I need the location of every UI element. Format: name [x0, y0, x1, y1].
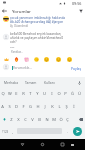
staticText: C: [24, 117, 27, 123]
button[interactable]: Shift: [0, 113, 8, 126]
staticText: Z: [10, 117, 13, 123]
staticText: #b-b20 #changeourdiag #AJ #jargon: [10, 20, 64, 24]
staticText: İ: [73, 104, 75, 110]
staticText: Tamam: [25, 80, 37, 84]
button[interactable]: E: [13, 87, 20, 100]
staticText: Y: [36, 91, 39, 97]
button[interactable]: Back: [0, 6, 9, 15]
staticText: Ç: [66, 117, 69, 123]
staticText: O: [57, 91, 61, 97]
staticText: Ğ: [71, 91, 74, 97]
staticText: Ü: [78, 91, 81, 97]
button[interactable]: W: [6, 87, 13, 100]
button[interactable]: K: [49, 100, 56, 113]
button[interactable]: Reaction: [32, 55, 40, 63]
button[interactable]: Reaction: [42, 55, 50, 63]
button[interactable]: T: [27, 87, 34, 100]
button[interactable]: U: [41, 87, 48, 100]
button[interactable]: Send: [72, 126, 82, 137]
staticText: A: [1, 104, 4, 110]
button[interactable]: B: [36, 113, 43, 126]
button[interactable]: Merhaba: [2, 78, 20, 86]
staticText: P: [64, 91, 67, 97]
button[interactable]: V: [29, 113, 36, 126]
button[interactable]: Comma: [10, 126, 16, 137]
button[interactable]: Y: [34, 87, 41, 100]
staticText: S: [8, 104, 11, 110]
staticText: J: [44, 104, 46, 110]
button[interactable]: Ğ: [69, 87, 76, 100]
button[interactable]: Switch keyboard: [67, 139, 77, 150]
staticText: I: [51, 91, 53, 97]
button[interactable]: H: [34, 100, 41, 113]
staticText: 4y Düzenlendi: [10, 24, 28, 28]
staticText: K: [51, 104, 54, 110]
button[interactable]: Home: [37, 139, 47, 150]
button[interactable]: Q: [0, 87, 6, 100]
staticText: ?123: [2, 130, 9, 134]
button[interactable]: Ö: [57, 113, 64, 126]
staticText: Yorum ekle...: [13, 66, 32, 70]
button[interactable]: S: [6, 100, 13, 113]
button[interactable]: Tamam: [23, 78, 39, 86]
button[interactable]: Filter: [76, 6, 85, 15]
button[interactable]: Ç: [64, 113, 71, 126]
button[interactable]: M: [50, 113, 57, 126]
staticText: V: [31, 117, 34, 123]
button[interactable]: Reaction: [65, 55, 73, 63]
staticText: F: [22, 104, 25, 110]
staticText: D: [15, 104, 18, 110]
button[interactable]: N: [43, 113, 50, 126]
staticText: H: [36, 104, 40, 110]
button[interactable]: O: [55, 87, 62, 100]
button[interactable]: Reaction: [2, 55, 10, 63]
staticText: 09:56: [72, 1, 82, 6]
staticText: .: [67, 129, 69, 134]
button[interactable]: Ü: [76, 87, 83, 100]
button[interactable]: R: [20, 87, 27, 100]
button[interactable]: I: [48, 87, 55, 100]
button[interactable]: Back: [17, 139, 27, 150]
staticText: Merhaba: [4, 80, 18, 84]
button[interactable]: A: [0, 100, 6, 113]
button[interactable]: P: [62, 87, 69, 100]
button[interactable]: İ: [70, 100, 77, 113]
button[interactable]: L: [56, 100, 63, 113]
button[interactable]: Reaction: [12, 55, 20, 63]
staticText: M: [52, 117, 56, 123]
button[interactable]: ?123: [0, 126, 10, 137]
button[interactable]: Voice input: [76, 78, 83, 87]
staticText: E: [15, 91, 18, 97]
staticText: ufürkk ve paylaşım ahbinVkmatheolI: [10, 36, 64, 40]
staticText: X: [17, 117, 20, 123]
button[interactable]: Ş: [63, 100, 70, 113]
button[interactable]: X: [15, 113, 22, 126]
button[interactable]: Reaction: [22, 55, 30, 63]
staticText: ,: [12, 129, 14, 134]
button[interactable]: D: [13, 100, 20, 113]
button[interactable]: Paylaş: [68, 63, 84, 72]
staticText: G: [29, 104, 32, 110]
staticText: çocuk yanımızın imkânsızlığı hakkında: [10, 16, 66, 20]
button[interactable]: G: [27, 100, 34, 113]
button[interactable]: C: [22, 113, 29, 126]
staticText: Kullanı: [44, 80, 55, 84]
button[interactable]: Backspace: [76, 113, 85, 126]
button[interactable]: Kullanı: [42, 78, 57, 86]
staticText: bella500 Benzhod enyirk kasandan,: [10, 32, 62, 36]
staticText: Yanıtlar...: [11, 50, 23, 54]
button[interactable]: Z: [8, 113, 15, 126]
staticText: coh?: [10, 40, 17, 44]
button[interactable]: Reaction: [54, 55, 62, 63]
staticText: L: [58, 104, 61, 110]
staticText: T: [29, 91, 32, 97]
button[interactable]: J: [41, 100, 48, 113]
staticText: R: [22, 91, 25, 97]
button[interactable]: Recents: [57, 139, 67, 150]
staticText: W: [8, 91, 12, 97]
button[interactable]: Yanıtlar...: [10, 49, 24, 55]
button[interactable]: F: [20, 100, 27, 113]
staticText: Ş: [65, 104, 68, 110]
